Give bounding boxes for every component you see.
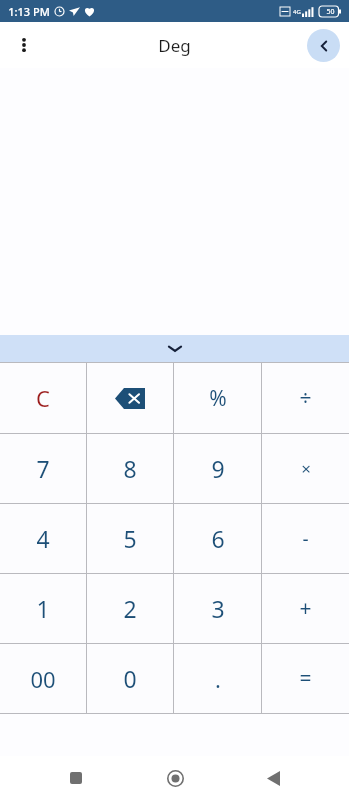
button[interactable]: 00 (0, 644, 86, 713)
button[interactable]: Backspace (87, 363, 173, 433)
staticText: 2 (123, 593, 137, 624)
button[interactable]: 1 (0, 574, 86, 643)
staticText: 1:13 PM (8, 4, 50, 19)
button[interactable]: Back (251, 756, 295, 800)
button[interactable]: 5 (87, 504, 173, 573)
staticText: 4G (293, 8, 301, 16)
staticText: 3 (211, 593, 225, 624)
staticText: 1 (36, 593, 50, 624)
staticText: × (301, 457, 311, 480)
button[interactable]: % (174, 363, 261, 433)
staticText: 8 (123, 453, 137, 484)
staticText: . (215, 664, 221, 694)
button[interactable]: 9 (174, 434, 261, 503)
staticText: 7 (36, 453, 50, 484)
button[interactable]: 4 (0, 504, 86, 573)
button[interactable]: - (262, 504, 349, 573)
button[interactable]: ÷ (262, 363, 349, 433)
button[interactable]: + (262, 574, 349, 643)
button[interactable]: . (174, 644, 261, 713)
button[interactable]: 6 (174, 504, 261, 573)
staticText: 0 (123, 663, 137, 694)
staticText: + (299, 594, 312, 623)
button[interactable]: 2 (87, 574, 173, 643)
button[interactable]: 0 (87, 644, 173, 713)
staticText: 50 (326, 7, 335, 17)
button[interactable]: C (0, 363, 86, 433)
staticText: 9 (211, 453, 225, 484)
staticText: 4 (36, 523, 50, 554)
staticText: 5 (123, 523, 137, 554)
staticText: Deg (158, 34, 191, 57)
staticText: 00 (30, 664, 56, 694)
staticText: 6 (211, 523, 225, 554)
button[interactable]: Expand keypad (0, 335, 349, 362)
button[interactable]: More options (6, 27, 42, 63)
button[interactable]: 8 (87, 434, 173, 503)
staticText: - (302, 526, 309, 552)
staticText: ÷ (299, 384, 312, 413)
button[interactable]: 3 (174, 574, 261, 643)
staticText: % (209, 384, 227, 413)
staticText: = (299, 664, 312, 693)
button[interactable]: = (262, 644, 349, 713)
button[interactable]: × (262, 434, 349, 503)
button[interactable]: 7 (0, 434, 86, 503)
button[interactable]: Recents (54, 756, 98, 800)
button[interactable]: Back (307, 29, 340, 62)
button[interactable]: Home (153, 756, 197, 800)
staticText: C (36, 383, 50, 413)
